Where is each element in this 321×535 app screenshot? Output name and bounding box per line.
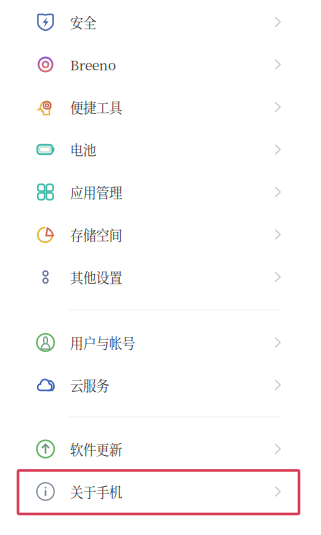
button[interactable]: 应用管理 — [0, 171, 321, 213]
button[interactable]: 存储空间 — [0, 213, 321, 256]
button[interactable]: 其他设置 — [0, 256, 321, 298]
button[interactable]: 安全 — [0, 1, 321, 43]
staticText: 安全 — [70, 12, 96, 32]
staticText: 云服务 — [70, 375, 109, 395]
button[interactable]: 便捷工具 — [0, 86, 321, 128]
button[interactable]: 关于手机 — [0, 470, 321, 513]
staticText: 其他设置 — [70, 267, 122, 287]
button[interactable]: 软件更新 — [0, 428, 321, 470]
staticText: 应用管理 — [70, 182, 122, 202]
staticText: 电池 — [70, 140, 96, 159]
staticText: 用户与帐号 — [70, 333, 135, 352]
button[interactable]: Breeno — [0, 43, 321, 86]
button[interactable]: 电池 — [0, 128, 321, 171]
staticText: Breeno — [70, 55, 116, 74]
staticText: 关于手机 — [70, 482, 122, 501]
button[interactable]: 用户与帐号 — [0, 321, 321, 364]
staticText: 便捷工具 — [70, 97, 122, 117]
button[interactable]: 云服务 — [0, 364, 321, 406]
staticText: 软件更新 — [70, 439, 122, 459]
staticText: 存储空间 — [70, 225, 122, 244]
